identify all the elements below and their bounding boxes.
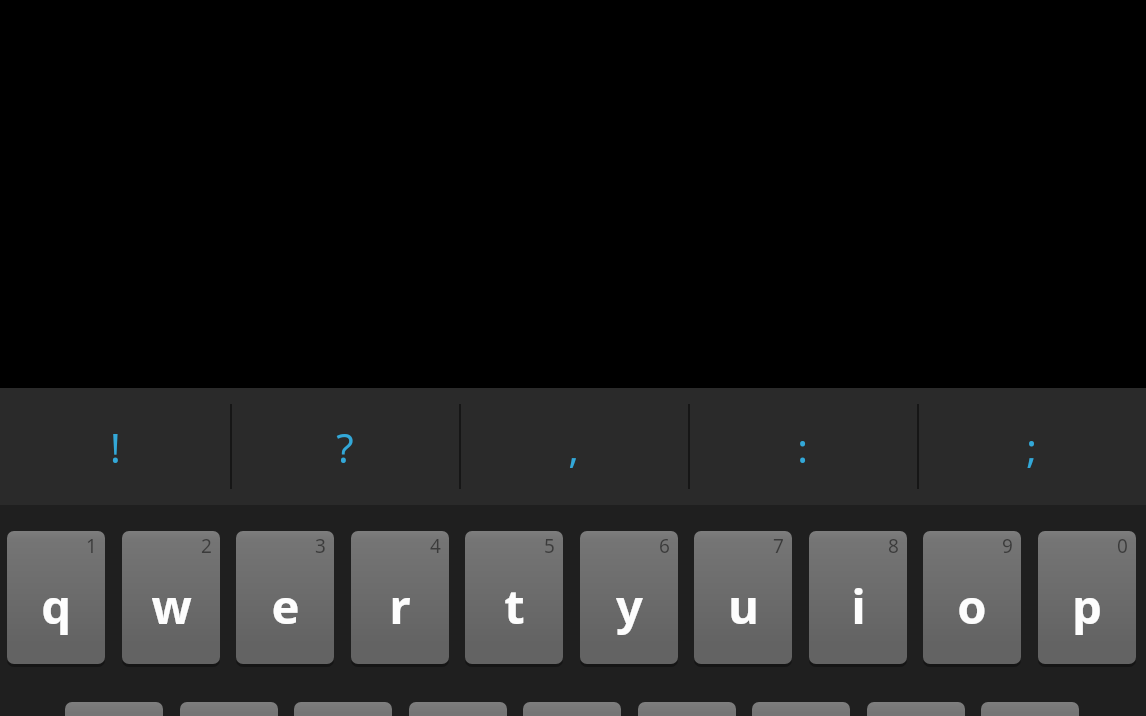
staticText: ? (336, 420, 354, 474)
staticText: 4 (430, 533, 441, 559)
staticText: 2 (201, 533, 212, 559)
staticText: 9 (1002, 533, 1013, 559)
staticText: 5 (544, 533, 555, 559)
button[interactable]: ; (917, 388, 1146, 505)
button[interactable]: k (867, 702, 965, 716)
staticText: ; (1026, 420, 1037, 474)
staticText: ! (110, 420, 121, 474)
staticText: r (389, 574, 411, 638)
button[interactable]: 4 (351, 531, 449, 664)
button[interactable]: l (981, 702, 1079, 716)
staticText: 7 (773, 533, 784, 559)
button[interactable]: 6 (580, 531, 678, 664)
button[interactable]: : (688, 388, 917, 505)
staticText: 6 (659, 533, 670, 559)
staticText: q (41, 574, 71, 638)
staticText: p (1072, 574, 1102, 638)
button[interactable]: 2 (122, 531, 220, 664)
button[interactable]: d (294, 702, 392, 716)
staticText: 0 (1117, 533, 1128, 559)
button[interactable]: j (752, 702, 850, 716)
button[interactable]: 7 (694, 531, 792, 664)
button[interactable]: 3 (236, 531, 334, 664)
button[interactable]: 0 (1038, 531, 1136, 664)
staticText: u (728, 574, 759, 638)
button[interactable]: 1 (7, 531, 105, 664)
staticText: 8 (888, 533, 899, 559)
staticText: w (151, 574, 192, 638)
button[interactable]: , (459, 388, 688, 505)
staticText: e (271, 574, 300, 638)
button[interactable]: f (409, 702, 507, 716)
staticText: y (616, 574, 643, 638)
button[interactable]: a (65, 702, 163, 716)
staticText: : (797, 420, 808, 474)
button[interactable]: 8 (809, 531, 907, 664)
button[interactable]: ! (0, 388, 230, 505)
staticText: 3 (315, 533, 326, 559)
button[interactable]: 9 (923, 531, 1021, 664)
button[interactable]: ? (230, 388, 459, 505)
button[interactable]: h (638, 702, 736, 716)
staticText: t (504, 574, 525, 638)
button[interactable]: s (180, 702, 278, 716)
staticText: 1 (86, 533, 97, 559)
staticText: o (957, 574, 987, 638)
button[interactable]: g (523, 702, 621, 716)
staticText: , (568, 420, 579, 474)
staticText: i (851, 574, 866, 638)
button[interactable]: 5 (465, 531, 563, 664)
